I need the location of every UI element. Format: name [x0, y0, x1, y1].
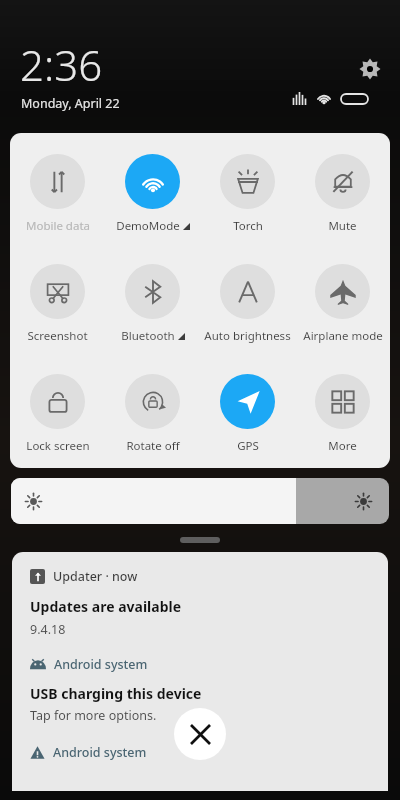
- button[interactable]: Expand: [180, 537, 220, 543]
- staticText: Torch: [233, 218, 263, 234]
- staticText: Updates are available: [30, 597, 182, 616]
- button[interactable]: DemoMode: [105, 141, 200, 251]
- staticText: DemoMode: [116, 218, 180, 234]
- button[interactable]: Lock screen: [10, 361, 105, 466]
- button[interactable]: Auto brightness: [200, 251, 295, 361]
- button[interactable]: Mute: [295, 141, 390, 251]
- staticText: Android system: [54, 656, 148, 673]
- staticText: Screenshot: [27, 328, 88, 344]
- button[interactable]: Airplane mode: [295, 251, 390, 361]
- button[interactable]: Bluetooth: [105, 251, 200, 361]
- staticText: 9.4.18: [30, 621, 66, 638]
- staticText: Lock screen: [26, 438, 90, 454]
- staticText: Auto brightness: [204, 328, 291, 344]
- button[interactable]: GPS: [200, 361, 295, 466]
- button[interactable]: Rotate off: [105, 361, 200, 466]
- staticText: GPS: [237, 438, 259, 454]
- button[interactable]: Screenshot: [10, 251, 105, 361]
- staticText: USB charging this device: [30, 684, 202, 703]
- button[interactable]: Android system: [12, 744, 388, 761]
- staticText: Updater · now: [53, 568, 138, 585]
- staticText: More: [328, 438, 357, 454]
- staticText: Mute: [328, 218, 357, 234]
- staticText: Mobile data: [26, 218, 90, 234]
- staticText: Bluetooth: [121, 328, 175, 344]
- staticText: Rotate off: [126, 438, 180, 454]
- button[interactable]: Close: [174, 708, 226, 760]
- button[interactable]: Settings: [355, 54, 385, 84]
- button[interactable]: Mobile data: [10, 141, 105, 251]
- button[interactable]: Torch: [200, 141, 295, 251]
- button[interactable]: Brightness: [11, 478, 389, 524]
- staticText: Android system: [53, 744, 147, 761]
- staticText: Airplane mode: [303, 328, 383, 344]
- staticText: Tap for more options.: [30, 707, 157, 724]
- staticText: Monday, April 22: [21, 95, 120, 112]
- button[interactable]: More: [295, 361, 390, 466]
- button[interactable]: Updater · now: [12, 552, 388, 656]
- staticText: 2:36: [20, 36, 103, 93]
- button[interactable]: Android system: [12, 656, 388, 744]
